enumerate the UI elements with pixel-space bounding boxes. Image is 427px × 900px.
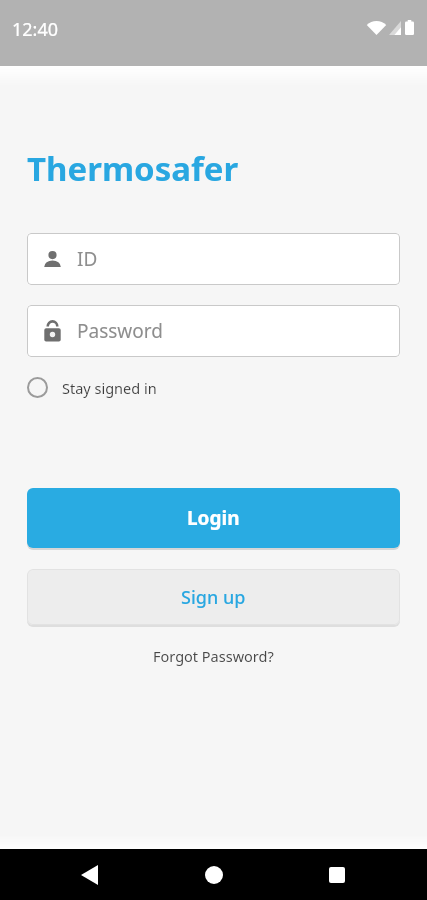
staticText: 12:40	[12, 17, 59, 42]
staticText: Stay signed in	[62, 378, 157, 398]
button[interactable]: Login	[27, 488, 400, 548]
staticText: Login	[187, 505, 240, 531]
button[interactable]	[69, 855, 109, 895]
button[interactable]	[194, 855, 234, 895]
button[interactable]: Sign up	[27, 569, 400, 625]
staticText: Password	[77, 318, 163, 344]
staticText: ID	[77, 246, 98, 272]
button[interactable]: Password	[27, 305, 400, 357]
button[interactable]: Forgot Password?	[149, 642, 278, 670]
button[interactable]: Stay signed in	[27, 377, 157, 398]
button[interactable]	[317, 855, 357, 895]
button[interactable]: ID	[27, 233, 400, 285]
staticText: Thermosafer	[27, 146, 239, 191]
staticText: Sign up	[181, 585, 246, 610]
